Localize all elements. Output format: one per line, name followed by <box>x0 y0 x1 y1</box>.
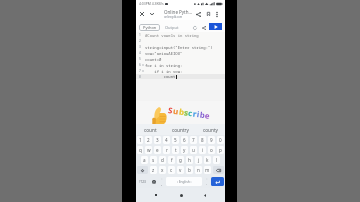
staticText: 4:03PM 4.3KB/s <box>139 1 164 6</box>
staticText: y <box>183 147 186 153</box>
staticText: s <box>152 157 155 163</box>
staticText: z <box>152 167 155 173</box>
button[interactable]: t <box>172 146 179 154</box>
staticText: 9 <box>210 137 213 143</box>
button[interactable]: n <box>195 166 202 174</box>
staticText: 8 <box>139 75 141 79</box>
button[interactable]: Emoji <box>149 175 158 188</box>
button[interactable]: v <box>177 166 184 174</box>
button[interactable]: Python <box>139 24 160 31</box>
staticText: count <box>144 127 157 133</box>
button[interactable]: ◦ <box>158 175 165 188</box>
staticText: 2 <box>139 39 141 43</box>
button[interactable]: 6 <box>181 136 188 144</box>
button[interactable]: Expand <box>147 9 157 19</box>
staticText: t <box>175 147 177 153</box>
button[interactable]: h <box>186 156 193 164</box>
staticText: 1 <box>139 33 141 37</box>
button[interactable]: f <box>168 156 175 164</box>
staticText: Python <box>143 25 157 30</box>
button[interactable]: Recents <box>151 190 161 200</box>
button[interactable]: Space <box>166 177 202 186</box>
button[interactable]: l <box>213 156 220 164</box>
staticText: 4 <box>165 137 168 143</box>
staticText: ◦ <box>206 178 208 181</box>
button[interactable]: p <box>217 146 224 154</box>
button[interactable]: g <box>177 156 184 164</box>
button[interactable]: count <box>136 124 165 135</box>
staticText: n <box>197 167 200 173</box>
button[interactable]: y <box>181 146 188 154</box>
button[interactable]: Back <box>200 190 210 200</box>
button[interactable]: More options <box>213 10 221 18</box>
button[interactable]: 4 <box>163 136 170 144</box>
staticText: u <box>192 147 195 153</box>
button[interactable]: Share <box>193 9 203 19</box>
button[interactable]: s <box>150 156 157 164</box>
staticText: vow="aeiouAEIOU" <box>145 51 183 56</box>
button[interactable]: Run <box>209 23 222 30</box>
staticText: q <box>139 147 142 153</box>
staticText: m <box>205 167 210 173</box>
button[interactable]: county <box>195 124 225 135</box>
staticText: 3 <box>156 137 159 143</box>
staticText: g <box>179 157 182 163</box>
button[interactable]: m <box>204 166 211 174</box>
staticText: c <box>170 167 173 173</box>
staticText: i <box>202 147 204 153</box>
button[interactable]: 9 <box>208 136 215 144</box>
button[interactable]: b <box>186 166 193 174</box>
button[interactable]: Bookmark <box>203 9 213 19</box>
button[interactable]: 2 <box>145 136 152 144</box>
staticText: 5 <box>174 137 177 143</box>
button[interactable]: q <box>137 146 143 154</box>
staticText: 3 <box>139 45 141 49</box>
button[interactable]: Home <box>176 190 186 200</box>
button[interactable]: Enter <box>211 177 224 186</box>
button[interactable]: Refresh <box>190 23 200 33</box>
button[interactable]: 3 <box>154 136 161 144</box>
button[interactable]: e <box>154 146 161 154</box>
button[interactable]: Output <box>164 24 180 31</box>
button[interactable]: u <box>190 146 197 154</box>
button[interactable]: d <box>159 156 166 164</box>
button[interactable]: country <box>165 124 195 135</box>
button[interactable]: x <box>159 166 166 174</box>
staticText: 1 <box>139 137 142 143</box>
button[interactable]: c <box>168 166 175 174</box>
button[interactable]: a <box>141 156 148 164</box>
button[interactable]: r <box>163 146 170 154</box>
staticText: 2 <box>147 137 150 143</box>
staticText: f <box>171 157 173 163</box>
staticText: c <box>187 108 194 119</box>
staticText: b <box>188 167 191 173</box>
button[interactable]: i <box>199 146 206 154</box>
staticText: a <box>143 157 146 163</box>
button[interactable]: z <box>150 166 157 174</box>
button[interactable]: 1 <box>137 136 143 144</box>
staticText: v <box>179 167 182 173</box>
button[interactable]: Close <box>137 9 147 19</box>
staticText: Output <box>165 25 179 30</box>
button[interactable]: Shift <box>137 166 148 174</box>
staticText: b <box>178 107 185 118</box>
button[interactable]: Backspace <box>213 166 224 174</box>
staticText: k <box>206 157 209 163</box>
button[interactable]: o <box>208 146 215 154</box>
staticText: . <box>206 181 208 186</box>
button[interactable]: ?123 <box>136 175 149 188</box>
button[interactable]: 0 <box>217 136 224 144</box>
button[interactable]: Share <box>199 23 209 33</box>
button[interactable]: 5 <box>172 136 179 144</box>
button[interactable]: 7 <box>190 136 197 144</box>
button[interactable]: 8 <box>199 136 206 144</box>
staticText: l <box>216 157 218 163</box>
button[interactable]: k <box>204 156 211 164</box>
button[interactable]: j <box>195 156 202 164</box>
button[interactable]: w <box>145 146 152 154</box>
staticText: count=0 <box>145 57 162 62</box>
staticText: w <box>147 147 151 153</box>
staticText: ?123 <box>139 180 146 184</box>
staticText: 6 <box>183 137 186 143</box>
